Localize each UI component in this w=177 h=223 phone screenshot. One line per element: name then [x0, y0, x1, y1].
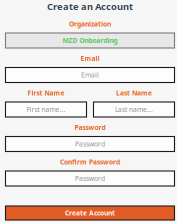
staticText: First name... [26, 105, 65, 114]
staticText: Create Account [65, 209, 115, 217]
staticText: Email [80, 54, 99, 63]
button[interactable]: Last name... [93, 102, 174, 117]
staticText: Password [75, 140, 105, 148]
staticText: Password [74, 123, 105, 132]
staticText: Last name... [115, 105, 153, 114]
staticText: Email [81, 71, 99, 79]
staticText: Password [75, 174, 105, 183]
staticText: MZD Onboarding [62, 36, 117, 45]
staticText: Confirm Password [60, 158, 120, 166]
button[interactable]: Create Account [5, 206, 174, 220]
staticText: Organization [69, 20, 111, 28]
button[interactable]: First name... [5, 102, 86, 117]
button[interactable]: Password [5, 136, 174, 151]
staticText: First Name [27, 89, 64, 97]
button[interactable]: Email [5, 67, 174, 82]
staticText: Last Name [116, 89, 152, 97]
button[interactable]: Password [5, 171, 174, 186]
staticText: Create an Account [47, 0, 133, 13]
